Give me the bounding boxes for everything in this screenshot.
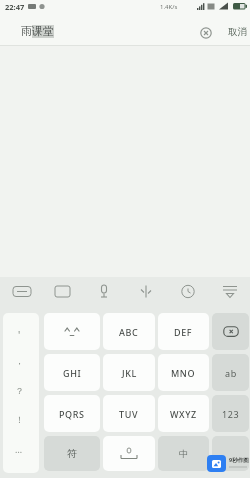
staticText: ABC: [119, 326, 139, 338]
staticText: ！: [15, 414, 24, 425]
staticText: 符: [67, 447, 78, 460]
button[interactable]: WXYZ: [158, 395, 209, 432]
staticText: 取消: [228, 26, 247, 38]
button[interactable]: 中: [158, 436, 209, 471]
staticText: DEF: [174, 326, 193, 338]
button[interactable]: JKL: [103, 354, 155, 391]
staticText: ，: [15, 355, 24, 366]
staticText: PQRS: [59, 408, 85, 420]
button[interactable]: MNO: [158, 354, 209, 391]
staticText: ab: [225, 367, 237, 379]
button[interactable]: DEF: [158, 313, 209, 350]
staticText: 9秒作图: [229, 456, 249, 464]
button[interactable]: [3, 313, 39, 473]
button[interactable]: TUV: [103, 395, 155, 432]
staticText: GHI: [63, 367, 82, 379]
button[interactable]: [212, 436, 249, 471]
staticText: ': [18, 328, 21, 342]
button[interactable]: GHI: [44, 354, 100, 391]
staticText: 1.4K/s: [160, 3, 178, 11]
staticText: ？: [15, 385, 24, 396]
button[interactable]: [0, 277, 250, 306]
button[interactable]: [212, 313, 249, 350]
button[interactable]: PQRS: [44, 395, 100, 432]
staticText: MNO: [171, 367, 196, 379]
staticText: WXYZ: [170, 408, 197, 420]
button[interactable]: [103, 436, 155, 471]
staticText: JKL: [122, 367, 137, 379]
button[interactable]: ab: [212, 354, 249, 391]
button[interactable]: ABC: [103, 313, 155, 350]
staticText: 22:47: [5, 2, 25, 12]
staticText: TUV: [119, 408, 139, 420]
staticText: 雨课堂: [21, 24, 54, 38]
button[interactable]: 123: [212, 395, 249, 432]
button[interactable]: 符: [44, 436, 100, 471]
button[interactable]: [44, 313, 100, 350]
staticText: 中: [179, 448, 189, 459]
staticText: …: [15, 443, 23, 455]
staticText: 123: [222, 408, 240, 420]
button[interactable]: 取消: [224, 23, 250, 40]
button[interactable]: [200, 27, 212, 39]
